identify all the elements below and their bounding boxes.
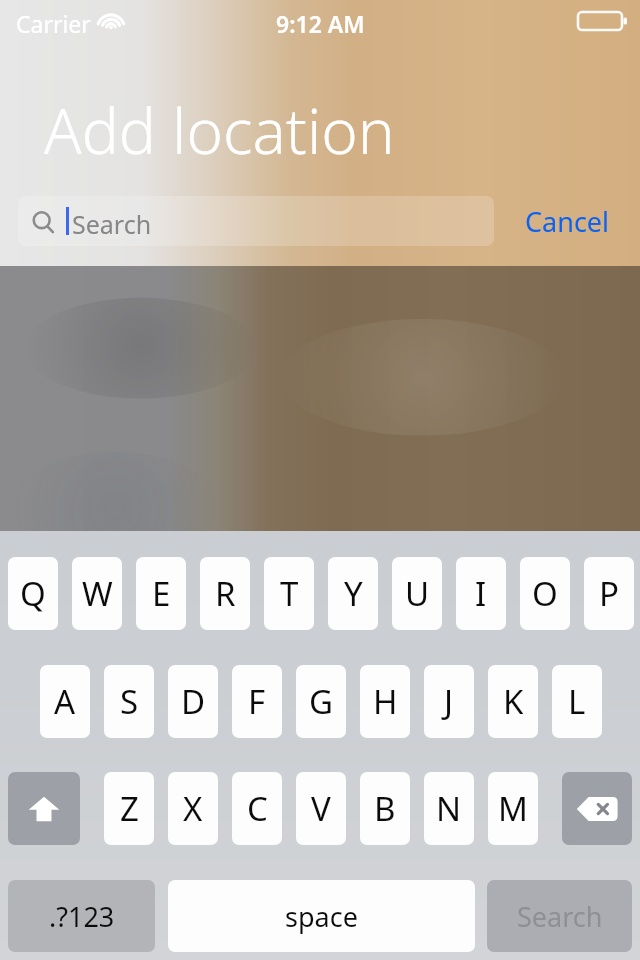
staticText: T [280,571,299,616]
staticText: G [309,679,334,724]
button[interactable]: C [232,772,282,845]
staticText: 9:12 AM [276,8,365,39]
button[interactable]: V [296,772,346,845]
staticText: R [215,571,236,616]
button[interactable]: E [136,557,186,630]
staticText: Search [517,898,603,935]
button[interactable]: F [232,665,282,738]
staticText: Cancel [525,203,610,240]
button[interactable]: T [264,557,314,630]
button[interactable]: Q [8,557,58,630]
button[interactable]: Cancel [506,196,628,246]
button[interactable]: N [424,772,474,845]
button[interactable]: space [168,880,475,952]
button[interactable]: U [392,557,442,630]
button[interactable]: L [552,665,602,738]
staticText: P [599,571,619,616]
staticText: X [183,786,203,831]
staticText: .?123 [49,898,115,935]
button[interactable]: J [424,665,474,738]
staticText: L [568,679,586,724]
staticText: M [498,786,528,831]
button[interactable]: S [104,665,154,738]
button[interactable]: H [360,665,410,738]
staticText: H [373,679,398,724]
button[interactable]: G [296,665,346,738]
button[interactable]: K [488,665,538,738]
button[interactable]: D [168,665,218,738]
button[interactable]: Search [18,196,494,246]
staticText: U [405,571,430,616]
button[interactable]: M [488,772,538,845]
button[interactable]: .?123 [8,880,155,952]
staticText: W [82,571,113,616]
staticText: V [311,786,331,831]
staticText: Q [20,571,46,616]
staticText: K [503,679,524,724]
button[interactable]: Search [487,880,632,952]
button[interactable]: O [520,557,570,630]
button[interactable]: Z [104,772,154,845]
staticText: D [181,679,206,724]
button[interactable]: Delete [562,772,632,845]
staticText: C [247,786,268,831]
button[interactable]: W [72,557,122,630]
staticText: N [436,786,462,831]
button[interactable]: A [40,665,90,738]
staticText: Z [120,786,139,831]
staticText: S [120,679,139,724]
button[interactable]: X [168,772,218,845]
staticText: Add location [44,88,395,172]
staticText: A [54,679,76,724]
staticText: J [444,679,454,724]
staticText: E [152,571,171,616]
staticText: Search [72,207,152,241]
button[interactable]: R [200,557,250,630]
button[interactable]: B [360,772,410,845]
button[interactable]: Shift [8,772,80,845]
staticText: space [285,898,358,935]
button[interactable]: I [456,557,506,630]
staticText: I [475,571,487,616]
staticText: F [248,679,266,724]
staticText: B [374,786,396,831]
button[interactable]: P [584,557,634,630]
staticText: O [532,571,558,616]
button[interactable]: Y [328,557,378,630]
staticText: Y [344,571,363,616]
staticText: Carrier [16,8,91,39]
